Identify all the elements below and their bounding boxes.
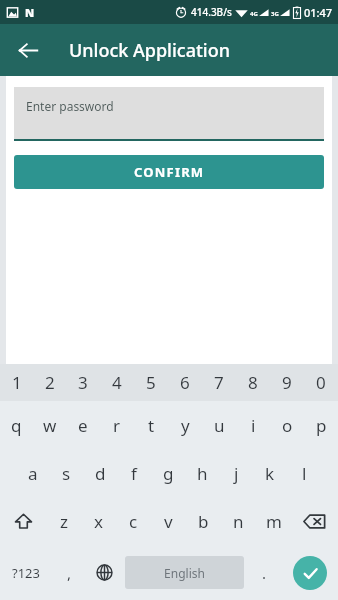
staticText: 0 xyxy=(316,371,326,394)
staticText: i xyxy=(251,414,256,437)
button[interactable]: g xyxy=(151,449,185,497)
button[interactable]: Enter password xyxy=(14,87,324,141)
button[interactable]: w xyxy=(33,401,66,449)
staticText: j xyxy=(234,462,239,485)
button[interactable]: j xyxy=(219,449,253,497)
button[interactable]: ?123 xyxy=(0,545,52,600)
staticText: 1 xyxy=(12,371,22,394)
staticText: a xyxy=(28,462,38,485)
button[interactable]: 8 xyxy=(236,364,270,401)
staticText: r xyxy=(113,414,121,437)
button[interactable]: c xyxy=(116,497,151,545)
button[interactable]: v xyxy=(151,497,186,545)
staticText: u xyxy=(214,414,225,437)
staticText: 3 xyxy=(78,371,88,394)
staticText: 4 xyxy=(112,371,122,394)
button[interactable]: . xyxy=(247,545,282,600)
button[interactable]: f xyxy=(117,449,151,497)
staticText: o xyxy=(282,414,293,437)
staticText: m xyxy=(266,510,282,533)
button[interactable]: Back xyxy=(8,30,48,70)
staticText: w xyxy=(43,414,57,437)
button[interactable]: 9 xyxy=(270,364,304,401)
staticText: 01:47 xyxy=(304,5,333,20)
staticText: h xyxy=(197,462,208,485)
staticText: 6 xyxy=(180,371,190,394)
button[interactable]: English xyxy=(125,556,244,589)
staticText: g xyxy=(163,462,174,485)
button[interactable]: r xyxy=(100,401,134,449)
button[interactable]: 6 xyxy=(168,364,202,401)
staticText: t xyxy=(148,414,155,437)
staticText: 8 xyxy=(248,371,258,394)
staticText: x xyxy=(94,510,103,533)
staticText: 414.3B/s xyxy=(191,5,232,19)
staticText: l xyxy=(302,462,307,485)
button[interactable]: x xyxy=(81,497,116,545)
staticText: 9 xyxy=(282,371,292,394)
button[interactable]: o xyxy=(270,401,304,449)
staticText: p xyxy=(316,414,327,437)
staticText: 5 xyxy=(146,371,156,394)
button[interactable]: 2 xyxy=(33,364,66,401)
staticText: c xyxy=(129,510,138,533)
button[interactable]: 7 xyxy=(202,364,236,401)
staticText: v xyxy=(164,510,173,533)
button[interactable]: 0 xyxy=(304,364,338,401)
staticText: English xyxy=(164,565,205,581)
staticText: 3G xyxy=(271,10,279,18)
button[interactable]: Enter xyxy=(293,556,327,590)
button[interactable]: a xyxy=(16,449,49,497)
staticText: q xyxy=(11,414,22,437)
staticText: y xyxy=(181,414,190,437)
button[interactable]: e xyxy=(66,401,100,449)
button[interactable]: t xyxy=(134,401,168,449)
button[interactable]: l xyxy=(287,449,321,497)
staticText: e xyxy=(78,414,88,437)
button[interactable]: CONFIRM xyxy=(14,155,324,189)
button[interactable]: k xyxy=(253,449,287,497)
button[interactable]: 4 xyxy=(100,364,134,401)
button[interactable]: m xyxy=(256,497,291,545)
staticText: Enter password xyxy=(26,98,114,114)
staticText: s xyxy=(62,462,71,485)
staticText: . xyxy=(262,563,267,583)
button[interactable]: 5 xyxy=(134,364,168,401)
staticText: Unlock Application xyxy=(69,38,231,63)
staticText: z xyxy=(60,510,68,533)
button[interactable]: y xyxy=(168,401,202,449)
button[interactable]: Change language xyxy=(87,545,122,600)
button[interactable]: Shift xyxy=(0,497,46,545)
button[interactable]: 1 xyxy=(0,364,33,401)
staticText: 2 xyxy=(45,371,55,394)
button[interactable]: u xyxy=(202,401,236,449)
button[interactable]: d xyxy=(83,449,117,497)
staticText: , xyxy=(67,563,72,583)
button[interactable]: p xyxy=(304,401,338,449)
button[interactable]: Backspace xyxy=(291,497,338,545)
staticText: d xyxy=(95,462,106,485)
button[interactable]: 3 xyxy=(66,364,100,401)
staticText: N xyxy=(25,5,35,20)
staticText: CONFIRM xyxy=(134,163,205,181)
button[interactable]: , xyxy=(52,545,87,600)
button[interactable]: q xyxy=(0,401,33,449)
staticText: n xyxy=(233,510,244,533)
button[interactable]: s xyxy=(49,449,83,497)
button[interactable]: b xyxy=(186,497,221,545)
staticText: f xyxy=(131,462,137,485)
button[interactable]: z xyxy=(46,497,81,545)
staticText: 4G xyxy=(250,10,258,18)
staticText: ?123 xyxy=(12,564,40,582)
button[interactable]: i xyxy=(236,401,270,449)
staticText: k xyxy=(265,462,275,485)
button[interactable]: n xyxy=(221,497,256,545)
button[interactable]: h xyxy=(185,449,219,497)
staticText: b xyxy=(198,510,209,533)
staticText: 7 xyxy=(214,371,224,394)
